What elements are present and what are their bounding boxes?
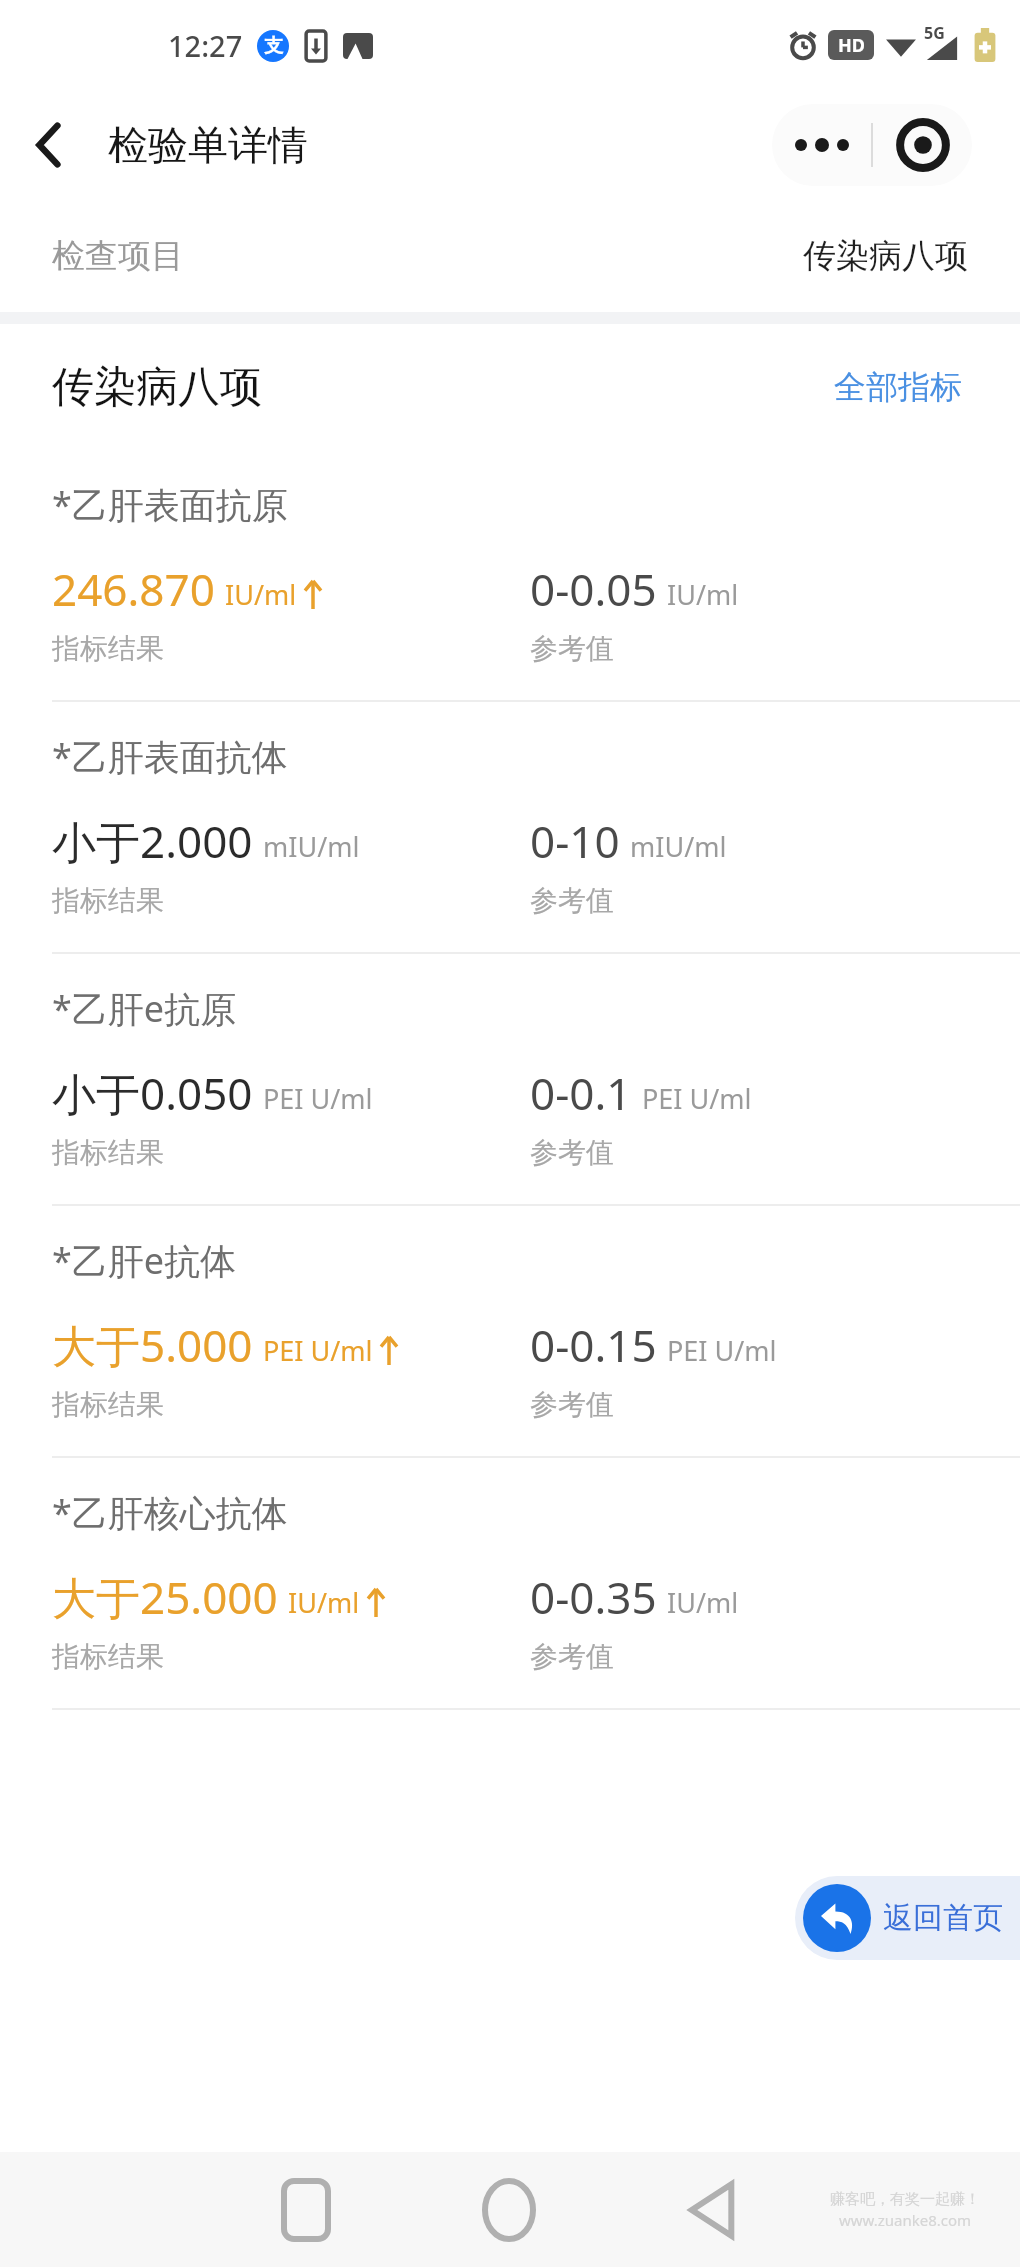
staticText: 传染病八项 bbox=[803, 235, 968, 277]
staticText: 小于2.000 bbox=[52, 811, 253, 871]
staticText: 赚客吧，有奖一起赚！ www.zuanke8.com bbox=[830, 2190, 980, 2230]
staticText: 大于5.000 bbox=[52, 1315, 253, 1375]
staticText: 参考值 bbox=[530, 1639, 614, 1674]
staticText: IU/ml bbox=[288, 1584, 360, 1621]
staticText: 参考值 bbox=[530, 883, 614, 918]
staticText: IU/ml bbox=[225, 576, 297, 613]
staticText: mIU/ml bbox=[630, 828, 727, 865]
staticText: HD bbox=[838, 33, 865, 58]
button[interactable]: Close bbox=[873, 104, 972, 186]
staticText: PEI U/ml bbox=[263, 1332, 373, 1369]
staticText: *乙肝表面抗原 bbox=[52, 480, 288, 529]
staticText: 0-0.15 bbox=[530, 1315, 657, 1375]
staticText: 参考值 bbox=[530, 1135, 614, 1170]
staticText: 检验单详情 bbox=[108, 120, 308, 170]
staticText: 指标结果 bbox=[52, 1135, 164, 1170]
button[interactable]: *乙肝表面抗体 bbox=[0, 702, 1020, 952]
staticText: 12:27 bbox=[168, 26, 243, 65]
staticText: *乙肝表面抗体 bbox=[52, 732, 288, 781]
button[interactable]: 全部指标 bbox=[828, 361, 968, 413]
staticText: PEI U/ml bbox=[642, 1080, 752, 1117]
staticText: 指标结果 bbox=[52, 1387, 164, 1422]
staticText: 大于25.000 bbox=[52, 1567, 278, 1627]
button[interactable]: *乙肝e抗体 bbox=[0, 1206, 1020, 1456]
button[interactable]: *乙肝表面抗原 bbox=[0, 450, 1020, 700]
staticText: 246.870 bbox=[52, 559, 215, 619]
button[interactable]: Back bbox=[18, 114, 80, 176]
staticText: 指标结果 bbox=[52, 883, 164, 918]
staticText: mIU/ml bbox=[263, 828, 360, 865]
staticText: 全部指标 bbox=[834, 367, 962, 407]
staticText: 0-0.35 bbox=[530, 1567, 657, 1627]
button[interactable]: Home bbox=[451, 2152, 566, 2267]
staticText: IU/ml bbox=[667, 1584, 739, 1621]
button[interactable]: 检查项目 bbox=[52, 200, 968, 312]
staticText: PEI U/ml bbox=[667, 1332, 777, 1369]
staticText: 指标结果 bbox=[52, 631, 164, 666]
staticText: *乙肝e抗体 bbox=[52, 1236, 237, 1285]
staticText: 0-10 bbox=[530, 811, 620, 871]
staticText: 传染病八项 bbox=[52, 361, 262, 414]
button[interactable]: 返回首页 bbox=[795, 1876, 1020, 1960]
staticText: PEI U/ml bbox=[263, 1080, 373, 1117]
staticText: 0-0.1 bbox=[530, 1063, 632, 1123]
staticText: 指标结果 bbox=[52, 1639, 164, 1674]
button[interactable]: Back bbox=[654, 2152, 769, 2267]
button[interactable]: *乙肝e抗原 bbox=[0, 954, 1020, 1204]
staticText: *乙肝核心抗体 bbox=[52, 1488, 288, 1537]
staticText: *乙肝e抗原 bbox=[52, 984, 237, 1033]
staticText: IU/ml bbox=[667, 576, 739, 613]
staticText: 参考值 bbox=[530, 1387, 614, 1422]
button[interactable]: *乙肝核心抗体 bbox=[0, 1458, 1020, 1708]
button[interactable]: More options bbox=[772, 104, 871, 186]
staticText: 参考值 bbox=[530, 631, 614, 666]
staticText: 小于0.050 bbox=[52, 1063, 253, 1123]
staticText: 返回首页 bbox=[883, 1899, 1003, 1937]
button[interactable]: Recent apps bbox=[248, 2152, 363, 2267]
staticText: 0-0.05 bbox=[530, 559, 657, 619]
staticText: 支 bbox=[264, 34, 283, 58]
staticText: 5G bbox=[924, 22, 945, 44]
staticText: 检查项目 bbox=[52, 235, 184, 277]
